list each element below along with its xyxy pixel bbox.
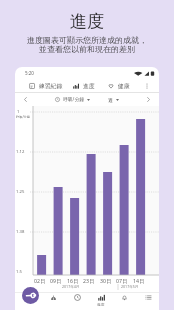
button[interactable]: Breathe (45, 294, 61, 309)
button[interactable]: 健康 (108, 79, 130, 92)
staticText: 09日 (50, 277, 62, 284)
button[interactable]: 練習紀錄 (29, 79, 63, 92)
staticText: 進度 (83, 82, 95, 89)
staticText: 2017年5月 (121, 284, 139, 289)
button[interactable]: 呼吸/分鐘 (55, 96, 90, 103)
staticText: 5:20 (25, 70, 34, 76)
staticText: 23日 (83, 277, 95, 284)
button[interactable]: 週 (108, 97, 119, 103)
staticText: 週 (108, 97, 113, 103)
staticText: 16日 (67, 277, 79, 284)
button[interactable]: Timer (69, 294, 85, 309)
staticText: 1.5 (16, 269, 22, 275)
staticText: 呼吸/分鐘 (16, 115, 30, 119)
button[interactable]: Settings (22, 287, 39, 304)
staticText: 呼吸/分鐘 (63, 96, 84, 103)
button[interactable]: Notifications (116, 294, 132, 309)
staticText: 進度 (0, 11, 174, 32)
staticText: 2017年4月 (62, 284, 80, 289)
staticText: 進度圖表可顯示您所達成的成就， 並查看您以前和現在的差別 (2, 35, 172, 54)
staticText: 14日 (133, 277, 145, 284)
staticText: 健康 (118, 82, 130, 89)
staticText: 練習紀錄 (39, 82, 63, 89)
button[interactable]: 進度 (93, 294, 109, 307)
staticText: 07日 (116, 277, 128, 284)
staticText: 1 (17, 109, 20, 115)
staticText: 30日 (100, 277, 112, 284)
staticText: 進度 (97, 302, 105, 307)
staticText: 1.38 (16, 229, 25, 235)
staticText: 1.25 (16, 189, 25, 195)
staticText: 02日 (34, 277, 46, 284)
button[interactable]: More (140, 294, 156, 309)
staticText: 1.12 (16, 149, 25, 155)
button[interactable]: Next period (137, 93, 159, 106)
button[interactable]: More options (140, 79, 153, 92)
button[interactable]: 進度 (73, 79, 95, 92)
button[interactable]: Previous period (15, 93, 36, 106)
